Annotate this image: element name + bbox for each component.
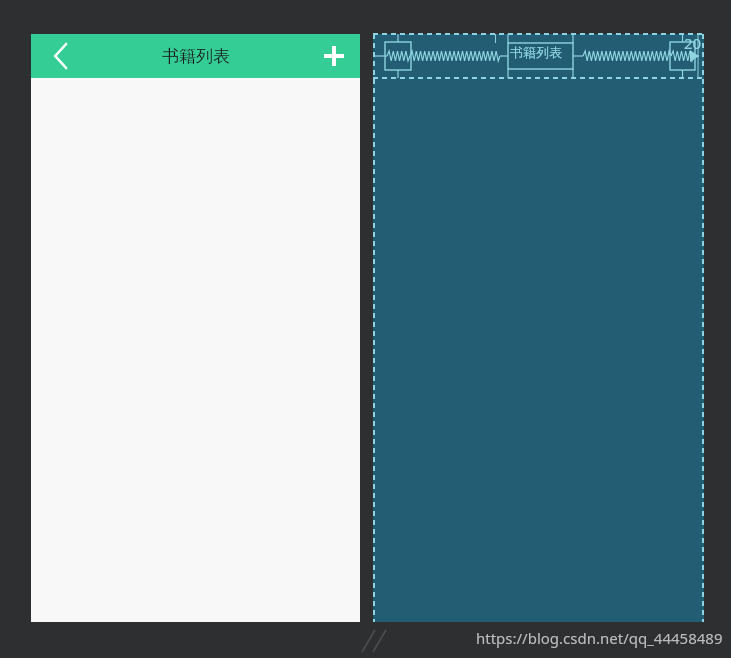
staticText: 书籍列表 (162, 46, 230, 67)
button[interactable]: Back (39, 34, 83, 78)
staticText: 20 (684, 33, 702, 53)
staticText: 书籍列表 (510, 44, 562, 60)
button[interactable]: Add book (312, 34, 356, 78)
staticText: https://blog.csdn.net/qq_44458489 (476, 628, 723, 648)
